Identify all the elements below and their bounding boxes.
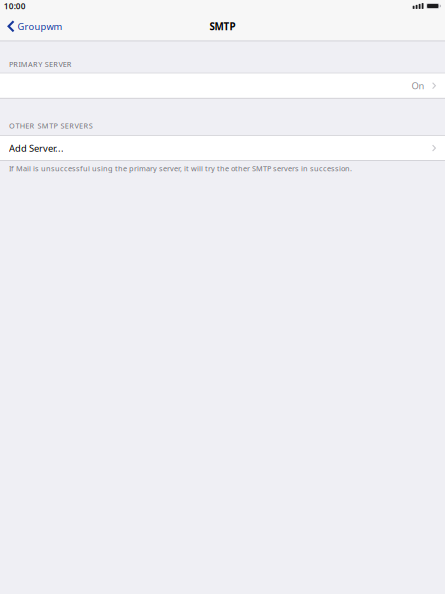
button[interactable]: Groupwm (0, 16, 69, 36)
button[interactable] (0, 73, 445, 98)
staticText: Add Server... (9, 142, 64, 154)
staticText: Groupwm (18, 20, 63, 33)
staticText: PRIMARY SERVER (9, 59, 72, 69)
staticText: OTHER SMTP SERVERS (9, 121, 93, 131)
staticText: On (411, 79, 424, 92)
button[interactable]: Add Server... (0, 136, 445, 160)
staticText: SMTP (209, 20, 235, 33)
staticText: If Mail is unsuccessful using the primar… (9, 163, 352, 173)
staticText: 10:00 (4, 0, 26, 12)
